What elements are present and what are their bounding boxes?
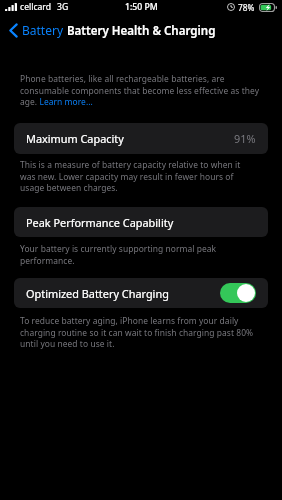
staticText: Maximum Capacity — [26, 131, 124, 146]
button[interactable]: Maximum Capacity — [14, 123, 268, 154]
button[interactable]: Optimized Battery Charging toggle — [220, 283, 256, 303]
staticText: This is a measure of battery capacity re… — [20, 159, 248, 194]
staticText: Battery — [22, 22, 64, 38]
staticText: Battery Health & Charging — [67, 23, 216, 39]
staticText: Optimized Battery Charging — [26, 286, 169, 301]
staticText: 78% — [238, 2, 255, 13]
staticText: cellcard — [20, 1, 52, 13]
staticText: 91% — [234, 131, 256, 146]
button[interactable]: Optimized Battery Charging — [14, 278, 268, 308]
staticText: 3G — [57, 1, 69, 13]
staticText: To reduce battery aging, iPhone learns f… — [20, 315, 260, 350]
staticText: 1:50 PM — [125, 1, 158, 13]
staticText: Your battery is currently supporting nor… — [20, 243, 248, 267]
button[interactable]: Peak Performance Capability — [14, 207, 268, 237]
staticText: Peak Performance Capability — [26, 215, 174, 230]
button[interactable]: Battery — [9, 19, 64, 41]
staticText: Phone batteries, like all rechargeable b… — [20, 73, 260, 108]
